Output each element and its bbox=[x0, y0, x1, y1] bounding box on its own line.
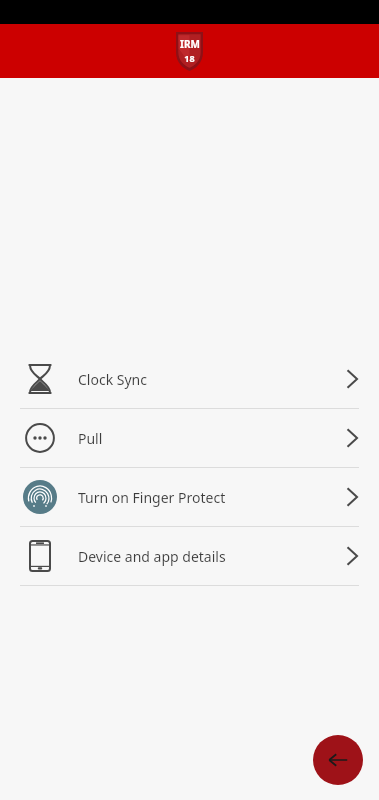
button[interactable]: Turn on Finger Protect bbox=[0, 468, 379, 526]
button[interactable]: Pull bbox=[0, 409, 379, 467]
staticText: Pull bbox=[78, 429, 345, 448]
staticText: 18 bbox=[184, 52, 195, 64]
staticText: Turn on Finger Protect bbox=[78, 488, 345, 507]
button[interactable]: Clock Sync bbox=[0, 350, 379, 408]
staticText: Clock Sync bbox=[78, 370, 345, 389]
button[interactable]: Device and app details bbox=[0, 527, 379, 585]
button[interactable]: Back bbox=[313, 735, 363, 785]
staticText: Device and app details bbox=[78, 547, 345, 566]
staticText: IRM bbox=[180, 37, 200, 51]
